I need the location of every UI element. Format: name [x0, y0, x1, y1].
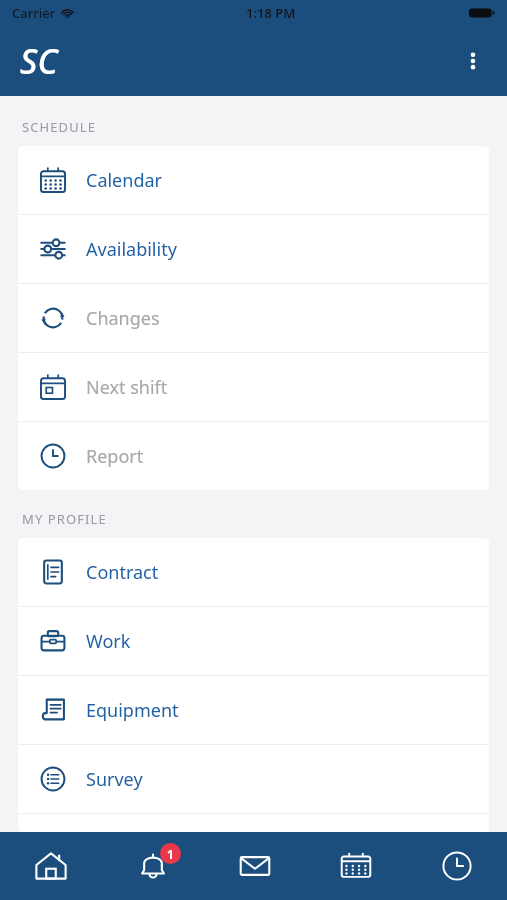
- staticText: Carrier: [12, 4, 56, 22]
- staticText: Report: [86, 444, 144, 469]
- button[interactable]: Next shift: [18, 353, 489, 421]
- button[interactable]: Work: [18, 607, 489, 675]
- staticText: SC: [20, 38, 58, 84]
- staticText: Survey: [86, 767, 143, 792]
- button[interactable]: Home: [0, 832, 102, 900]
- button[interactable]: Equipment: [18, 676, 489, 744]
- staticText: 1:18 PM: [246, 4, 296, 22]
- staticText: MY PROFILE: [22, 510, 107, 528]
- button[interactable]: Survey: [18, 745, 489, 813]
- button[interactable]: Report: [18, 422, 489, 490]
- staticText: SCHEDULE: [22, 118, 97, 136]
- staticText: Contract: [86, 560, 159, 585]
- staticText: Work: [86, 629, 131, 654]
- staticText: Availability: [86, 237, 177, 262]
- staticText: 1: [167, 846, 174, 862]
- button[interactable]: History: [406, 832, 507, 900]
- button[interactable]: Calendar: [18, 146, 489, 214]
- button[interactable]: Contract: [18, 538, 489, 606]
- staticText: Equipment: [86, 698, 179, 723]
- staticText: Changes: [86, 306, 160, 331]
- button[interactable]: Changes: [18, 284, 489, 352]
- button[interactable]: Calendar: [305, 832, 406, 900]
- button[interactable]: Notifications: [102, 832, 204, 900]
- staticText: Next shift: [86, 375, 168, 400]
- staticText: Calendar: [86, 168, 162, 193]
- button[interactable]: Availability: [18, 215, 489, 283]
- button[interactable]: Messages: [204, 832, 305, 900]
- button[interactable]: More options: [449, 37, 497, 85]
